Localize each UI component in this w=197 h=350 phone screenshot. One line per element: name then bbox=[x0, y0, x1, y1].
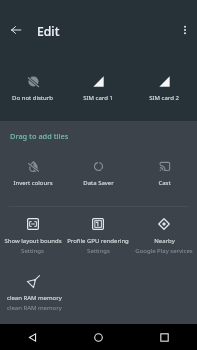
staticText: Data Saver bbox=[83, 179, 114, 187]
button[interactable]: More options bbox=[173, 18, 197, 42]
button[interactable]: Back bbox=[4, 18, 28, 42]
staticText: Profile GPU rendering bbox=[67, 237, 129, 245]
staticText: Cast bbox=[158, 179, 171, 187]
button[interactable]: Profile GPU rendering bbox=[65, 214, 131, 259]
button[interactable]: SIM card 1 bbox=[65, 71, 131, 106]
staticText: Edit bbox=[37, 23, 60, 40]
staticText: Nearby bbox=[154, 237, 175, 245]
button[interactable]: Do not disturb bbox=[0, 71, 65, 106]
button[interactable]: Nearby bbox=[131, 214, 197, 259]
button[interactable]: Invert colours bbox=[0, 156, 65, 191]
button[interactable]: Show layout bounds bbox=[0, 214, 65, 259]
button[interactable]: Back bbox=[0, 324, 65, 350]
staticText: clean RAM memory bbox=[7, 294, 62, 302]
staticText: SIM card 2 bbox=[149, 94, 179, 102]
button[interactable]: Recent apps bbox=[131, 324, 197, 350]
staticText: Drag to add tiles bbox=[10, 131, 69, 141]
staticText: Do not disturb bbox=[12, 94, 53, 102]
staticText: SIM card 1 bbox=[83, 94, 113, 102]
staticText: Settings bbox=[21, 247, 44, 255]
staticText: Google Play services bbox=[135, 247, 193, 255]
button[interactable]: SIM card 2 bbox=[131, 71, 197, 106]
button[interactable]: Data Saver bbox=[65, 156, 131, 191]
staticText: Invert colours bbox=[13, 179, 53, 187]
button[interactable]: Cast bbox=[131, 156, 197, 191]
staticText: clean RAM memory bbox=[7, 304, 62, 312]
staticText: Show layout bounds bbox=[4, 237, 62, 245]
button[interactable]: clean RAM memory bbox=[0, 271, 65, 315]
button[interactable]: Home bbox=[65, 324, 131, 350]
staticText: Settings bbox=[87, 247, 110, 255]
